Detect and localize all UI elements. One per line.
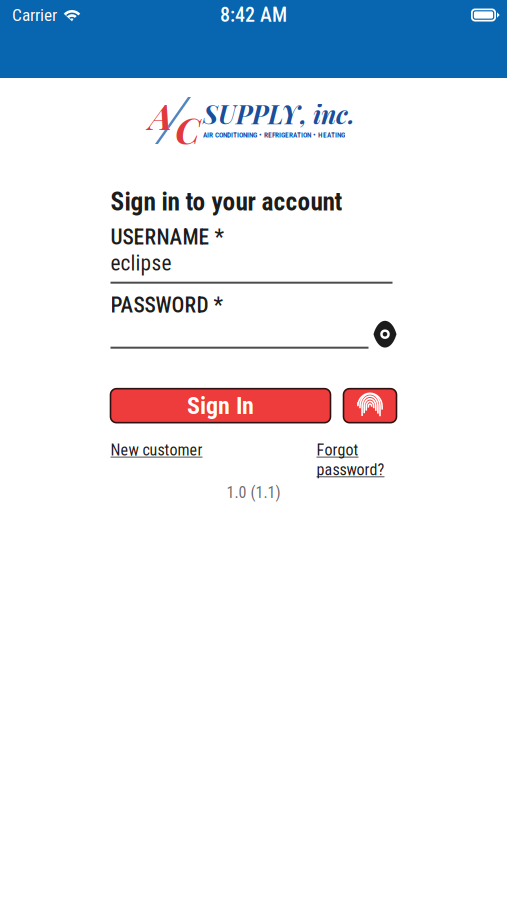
button[interactable]: Sign In — [110, 389, 330, 423]
staticText: PASSWORD * — [110, 293, 222, 318]
button[interactable]: Forgot — [316, 441, 384, 479]
staticText: AIR CONDITIONING • REFRIGERATION • HEATI… — [203, 131, 345, 139]
staticText: Carrier — [12, 5, 57, 25]
staticText: 8:42 AM — [220, 3, 287, 27]
staticText: SUPPLY, inc. — [203, 97, 355, 131]
staticText: Sign In — [187, 392, 254, 420]
staticText: password? — [316, 460, 384, 479]
staticText: A — [149, 91, 173, 139]
button[interactable]: Sign in with Touch ID — [343, 389, 396, 423]
staticText: 1.0 (1.1) — [226, 483, 280, 502]
staticText: Sign in to your account — [110, 187, 342, 217]
staticText: USERNAME * — [110, 225, 223, 250]
button[interactable]: New customer — [110, 441, 202, 459]
button[interactable]: Show password — [373, 326, 396, 349]
staticText: Forgot — [316, 441, 358, 459]
staticText: eclipse — [110, 251, 171, 276]
staticText: C — [175, 105, 200, 153]
staticText: New customer — [110, 441, 202, 459]
